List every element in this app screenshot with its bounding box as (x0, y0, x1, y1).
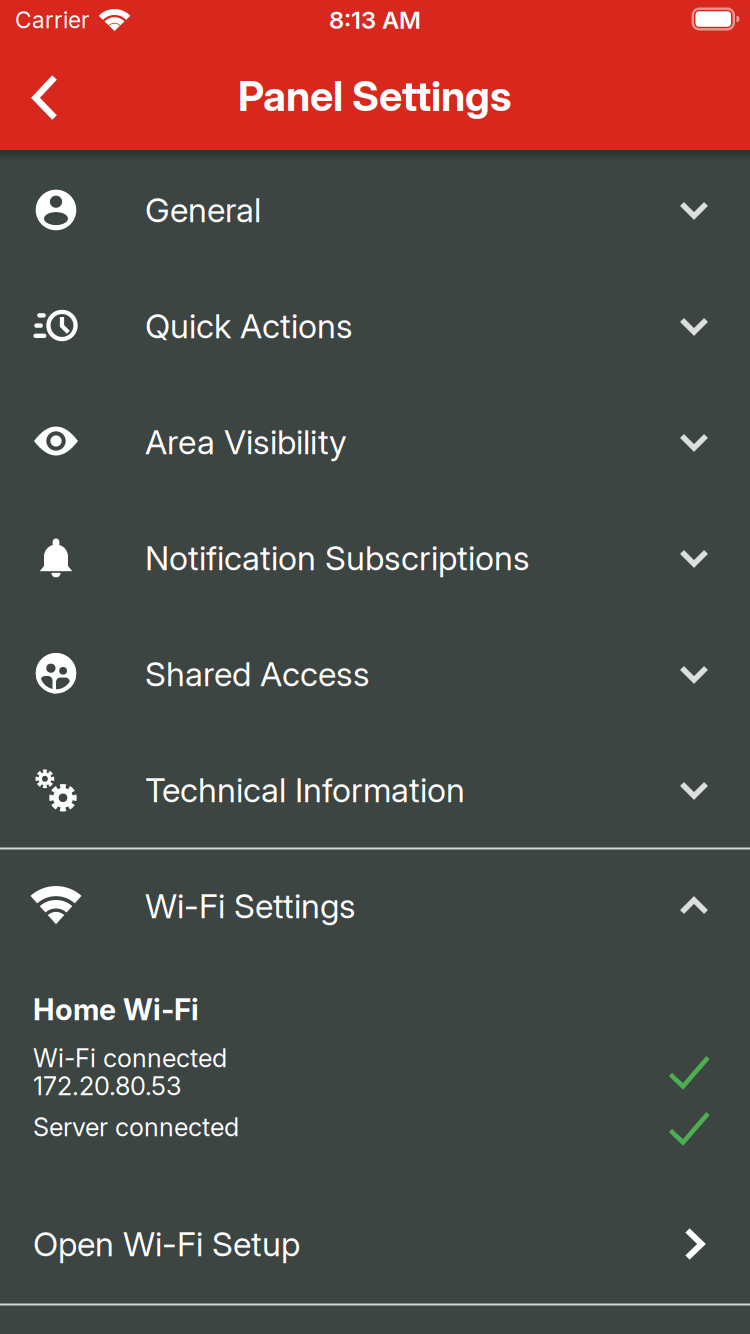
staticText: Wi-Fi connected (33, 1043, 227, 1073)
staticText: Wi-Fi Settings (145, 886, 356, 926)
staticText: 8:13 AM (329, 6, 421, 34)
staticText: Carrier (15, 7, 89, 33)
staticText: Quick Actions (145, 306, 353, 346)
staticText: General (145, 190, 261, 230)
staticText: Notification Subscriptions (145, 538, 530, 578)
staticText: Shared Access (145, 654, 370, 694)
staticText: Technical Information (145, 770, 465, 810)
staticText: Open Wi-Fi Setup (33, 1224, 300, 1264)
staticText: Panel Settings (238, 72, 512, 120)
staticText: Area Visibility (145, 422, 347, 462)
staticText: 172.20.80.53 (33, 1071, 182, 1101)
staticText: Home Wi-Fi (33, 992, 199, 1027)
staticText: Server connected (33, 1112, 239, 1142)
